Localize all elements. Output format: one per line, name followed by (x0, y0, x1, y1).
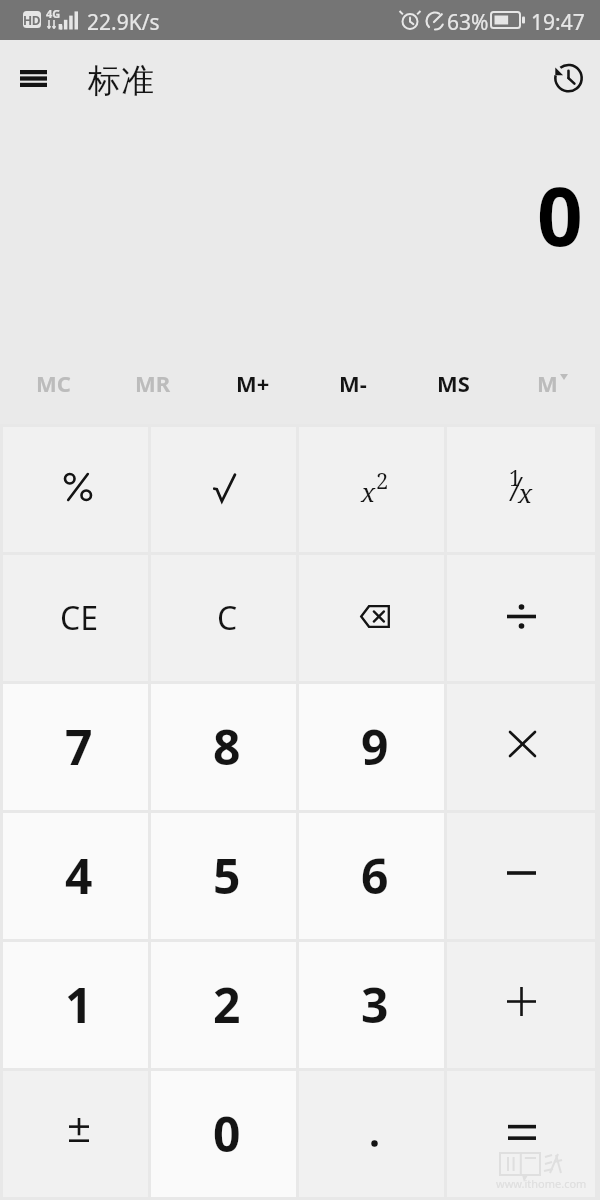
staticText: 标准 (88, 60, 154, 102)
staticText: 1 (509, 464, 521, 493)
staticText: M- (339, 368, 367, 398)
button[interactable]: 5 (151, 813, 296, 939)
button[interactable]: Reciprocal (447, 427, 595, 552)
staticText: CE (60, 596, 99, 640)
staticText: x (361, 474, 376, 509)
staticText: 7 (65, 714, 93, 779)
button[interactable]: 6 (299, 813, 444, 939)
button[interactable]: Percent (3, 427, 148, 552)
button[interactable]: Menu (6, 51, 60, 105)
button[interactable]: History (541, 50, 595, 104)
button[interactable]: Square root (151, 427, 296, 552)
button[interactable]: 1 (3, 942, 148, 1068)
button[interactable]: M- (300, 352, 400, 424)
staticText: 8 (213, 714, 241, 779)
button[interactable]: Square (299, 427, 444, 552)
button[interactable]: Minus (447, 813, 595, 939)
button[interactable]: C (151, 555, 296, 681)
button[interactable]: 3 (299, 942, 444, 1068)
staticText: 2 (213, 972, 241, 1037)
button[interactable]: 9 (299, 684, 444, 810)
staticText: 1 (65, 972, 93, 1037)
staticText: M (537, 368, 558, 398)
button[interactable]: Clear entry (3, 555, 148, 681)
staticText: 3 (361, 972, 389, 1037)
button[interactable]: 4 (3, 813, 148, 939)
staticText: 19:47 (531, 8, 585, 37)
button[interactable]: M+ (200, 352, 300, 424)
button[interactable]: MS (400, 352, 500, 424)
staticText: MC (36, 368, 71, 398)
staticText: 9 (361, 714, 389, 779)
staticText: ⁄ (515, 466, 518, 511)
button[interactable]: MR (100, 352, 200, 424)
staticText: 5 (213, 843, 241, 908)
staticText: 2 (376, 465, 389, 495)
staticText: HD (23, 12, 41, 28)
staticText: x (518, 475, 533, 510)
button[interactable]: Multiply (447, 684, 595, 810)
staticText: www.ithome.com (496, 1176, 587, 1191)
staticText: 4G (46, 6, 61, 21)
button[interactable]: 8 (151, 684, 296, 810)
staticText: MS (437, 368, 470, 398)
button[interactable]: Decimal point (299, 1071, 444, 1197)
button[interactable]: 0 (151, 1071, 296, 1197)
button[interactable]: 7 (3, 684, 148, 810)
button[interactable]: Memory list (500, 352, 600, 424)
staticText: M+ (236, 368, 270, 398)
button[interactable]: Plus (447, 942, 595, 1068)
button[interactable]: MC (0, 352, 100, 424)
staticText: C (217, 596, 238, 640)
staticText: 6 (361, 843, 389, 908)
staticText: 0 (213, 1101, 241, 1166)
button[interactable]: Divide (447, 555, 595, 681)
button[interactable]: 2 (151, 942, 296, 1068)
staticText: 22.9K/s (87, 8, 160, 37)
button[interactable]: Equals (447, 1071, 595, 1197)
staticText: 0 (537, 160, 583, 269)
staticText: 4 (65, 843, 93, 908)
staticText: 63% (447, 8, 489, 37)
button[interactable]: Backspace (299, 555, 444, 681)
button[interactable]: Positive negative (3, 1071, 148, 1197)
staticText: MR (135, 368, 171, 398)
